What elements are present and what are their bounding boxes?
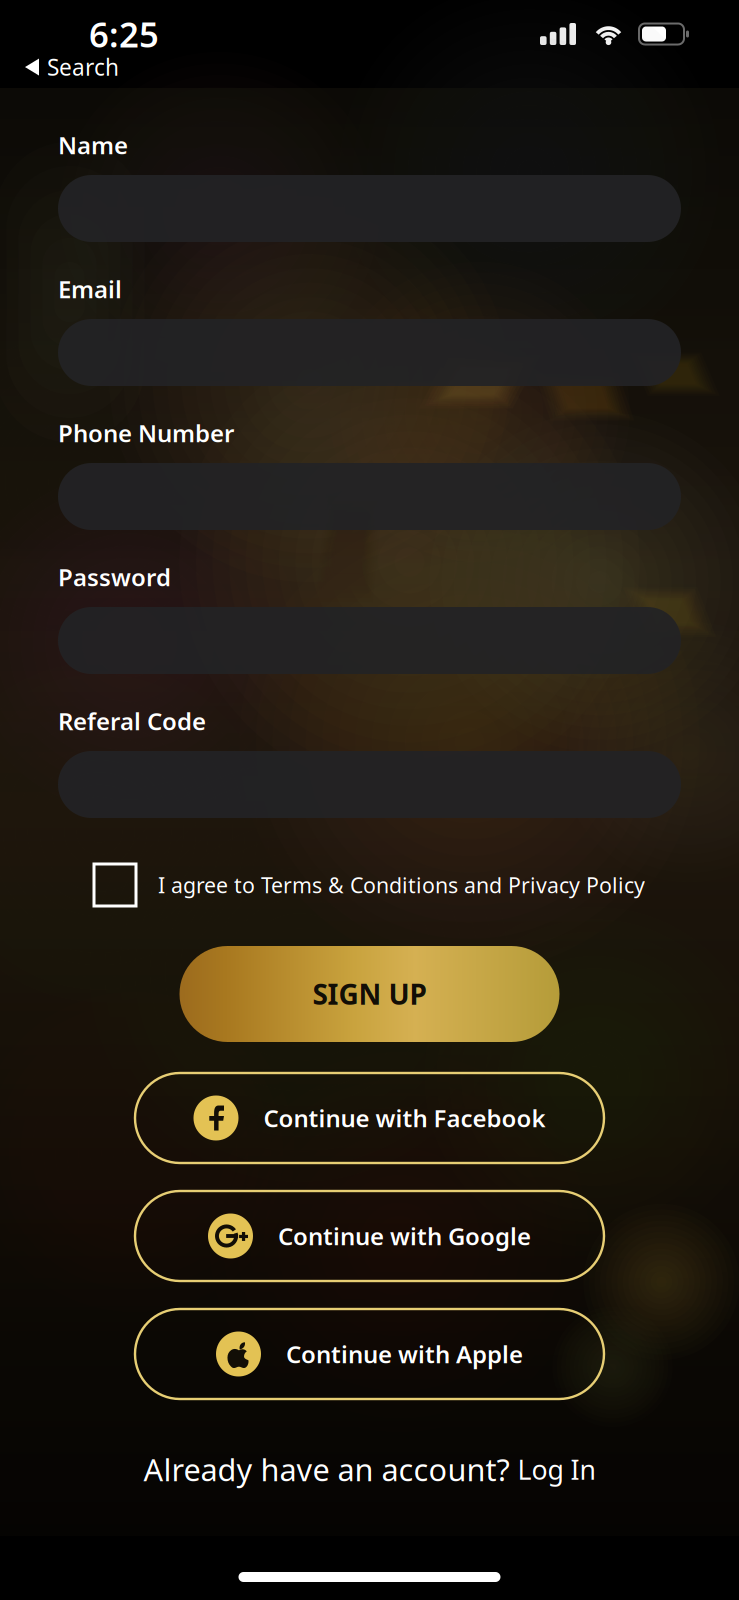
button[interactable]: Already have an account?: [143, 1449, 595, 1490]
staticText: I agree to Terms & Conditions and Privac…: [158, 871, 645, 899]
button[interactable]: SIGN UP: [179, 946, 559, 1042]
staticText: Already have an account?: [143, 1449, 517, 1490]
staticText: Phone Number: [58, 417, 234, 449]
staticText: 6:25: [89, 11, 159, 57]
button[interactable]: Name: [58, 175, 681, 242]
button[interactable]: Continue with Facebook: [135, 1073, 604, 1163]
staticText: Continue with Google: [278, 1220, 531, 1252]
staticText: Log In: [517, 1452, 595, 1487]
staticText: Password: [58, 561, 171, 593]
staticText: Continue with Facebook: [263, 1102, 545, 1134]
button[interactable]: Email: [58, 319, 681, 386]
staticText: SIGN UP: [312, 975, 426, 1013]
button[interactable]: Continue with Apple: [135, 1309, 604, 1399]
staticText: Search: [47, 52, 119, 82]
staticText: Email: [58, 273, 122, 305]
staticText: Referal Code: [58, 705, 206, 737]
staticText: Continue with Apple: [286, 1338, 523, 1370]
staticText: Name: [58, 129, 128, 161]
button[interactable]: Continue with Google: [135, 1191, 604, 1281]
button[interactable]: Phone Number: [58, 463, 681, 530]
button[interactable]: Agree to terms: [94, 864, 136, 906]
